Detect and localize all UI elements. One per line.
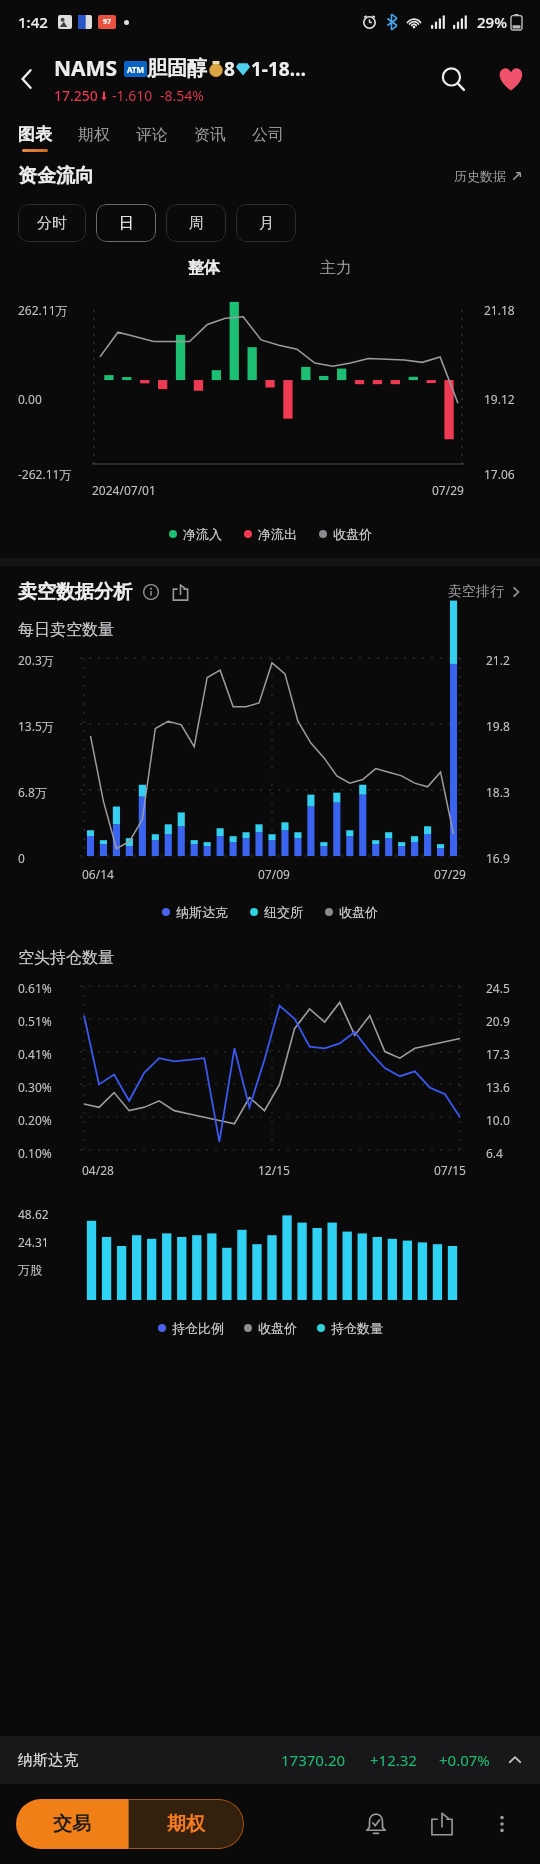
- staticText: 0.51%: [18, 1013, 52, 1029]
- staticText: 17.250: [54, 86, 98, 105]
- staticText: 6.8万: [18, 784, 47, 800]
- button[interactable]: Info: [140, 581, 162, 603]
- staticText: 07/29: [432, 482, 464, 498]
- staticText: 20.9: [486, 1013, 510, 1029]
- button[interactable]: 公司: [252, 125, 310, 152]
- button[interactable]: 周: [166, 204, 226, 242]
- staticText: 资讯: [194, 125, 226, 145]
- staticText: 万股: [18, 1262, 42, 1277]
- staticText: 2024/07/01: [92, 482, 156, 498]
- staticText: 持仓比例: [172, 1320, 224, 1336]
- staticText: 月: [259, 214, 274, 233]
- staticText: 21.18: [484, 302, 515, 318]
- staticText: 07/29: [434, 866, 466, 882]
- button[interactable]: Search: [424, 50, 482, 108]
- staticText: 0.61%: [18, 980, 52, 996]
- staticText: 日: [119, 214, 134, 233]
- staticText: 06/14: [82, 866, 114, 882]
- button[interactable]: 卖空排行: [448, 583, 522, 601]
- staticText: 胆固醇: [147, 56, 207, 81]
- staticText: 整体: [188, 258, 220, 278]
- staticText: 97: [103, 17, 112, 27]
- staticText: 收盘价: [333, 526, 372, 542]
- button[interactable]: Back: [0, 44, 54, 114]
- staticText: +0.07%: [439, 1750, 490, 1770]
- button[interactable]: 交易: [16, 1799, 128, 1849]
- staticText: 16.9: [486, 850, 510, 866]
- staticText: 1:42: [18, 12, 48, 32]
- staticText: 主力: [320, 258, 352, 278]
- staticText: 19.8: [486, 718, 510, 734]
- staticText: 资金流向: [18, 164, 94, 188]
- staticText: 净流入: [183, 526, 222, 542]
- button[interactable]: 期权: [78, 125, 136, 152]
- staticText: 0.41%: [18, 1046, 52, 1062]
- staticText: 分时: [37, 214, 67, 233]
- staticText: 卖空排行: [448, 583, 504, 601]
- staticText: 13.5万: [18, 718, 54, 734]
- staticText: 历史数据: [454, 168, 506, 184]
- staticText: 17.3: [486, 1046, 510, 1062]
- button[interactable]: Share: [418, 1800, 466, 1848]
- staticText: 纳斯达克: [18, 1751, 78, 1770]
- button[interactable]: Alerts: [352, 1800, 400, 1848]
- staticText: 10.0: [486, 1112, 510, 1128]
- staticText: 收盘价: [258, 1320, 297, 1336]
- button[interactable]: 资讯: [194, 125, 252, 152]
- staticText: 0.10%: [18, 1145, 52, 1161]
- staticText: 6.4: [486, 1145, 503, 1161]
- staticText: 0.00: [18, 391, 42, 407]
- staticText: 0: [18, 850, 25, 866]
- button[interactable]: 图表: [18, 124, 78, 152]
- staticText: 0.30%: [18, 1079, 52, 1095]
- staticText: 29%: [477, 12, 507, 32]
- staticText: 21.2: [486, 652, 510, 668]
- staticText: NAMS: [54, 54, 117, 83]
- staticText: 17370.20: [281, 1750, 346, 1770]
- staticText: ATM: [127, 64, 145, 75]
- button[interactable]: 分时: [18, 204, 86, 242]
- staticText: 图表: [18, 124, 52, 145]
- staticText: 卖空数据分析: [18, 580, 132, 604]
- staticText: +12.32: [370, 1750, 417, 1770]
- staticText: 07/09: [258, 866, 290, 882]
- button[interactable]: Favorite: [482, 50, 540, 108]
- staticText: 0.20%: [18, 1112, 52, 1128]
- staticText: 评论: [136, 125, 168, 145]
- staticText: 空头持仓数量: [18, 948, 114, 968]
- button[interactable]: 期权: [128, 1799, 244, 1849]
- staticText: 17.06: [484, 466, 515, 482]
- button[interactable]: 主力: [300, 258, 372, 278]
- staticText: 24.31: [18, 1234, 49, 1250]
- button[interactable]: More: [480, 1802, 524, 1846]
- button[interactable]: 纳斯达克: [18, 1736, 522, 1784]
- button[interactable]: 整体: [168, 258, 240, 278]
- staticText: 48.62: [18, 1206, 49, 1222]
- button[interactable]: 月: [236, 204, 296, 242]
- staticText: 公司: [252, 125, 284, 145]
- staticText: 净流出: [258, 526, 297, 542]
- staticText: 13.6: [486, 1079, 510, 1095]
- staticText: 每日卖空数量: [18, 620, 114, 640]
- staticText: 纽交所: [264, 904, 303, 920]
- button[interactable]: 历史数据: [454, 168, 522, 184]
- staticText: 262.11万: [18, 302, 68, 318]
- button[interactable]: 评论: [136, 125, 194, 152]
- staticText: 12/15: [258, 1162, 290, 1178]
- staticText: 24.5: [486, 980, 510, 996]
- staticText: 期权: [167, 1812, 205, 1836]
- button[interactable]: Share: [168, 580, 192, 604]
- staticText: 持仓数量: [331, 1320, 383, 1336]
- staticText: -8.54%: [160, 86, 204, 105]
- staticText: 19.12: [484, 391, 515, 407]
- staticText: 04/28: [82, 1162, 114, 1178]
- staticText: 07/15: [434, 1162, 466, 1178]
- staticText: -262.11万: [18, 466, 72, 482]
- staticText: 20.3万: [18, 652, 54, 668]
- staticText: 8: [224, 56, 235, 82]
- button[interactable]: 日: [96, 204, 156, 242]
- staticText: -1.610: [112, 86, 153, 105]
- staticText: 18.3: [486, 784, 510, 800]
- staticText: 周: [189, 214, 204, 233]
- staticText: 收盘价: [339, 904, 378, 920]
